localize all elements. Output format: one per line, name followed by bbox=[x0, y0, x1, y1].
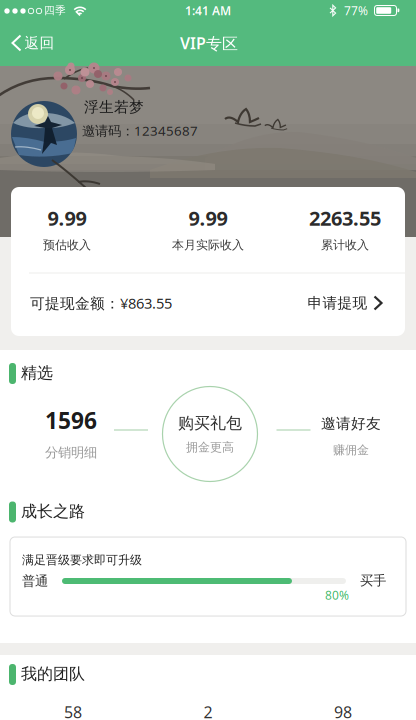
staticText: 拥金更高 bbox=[186, 440, 234, 455]
button[interactable]: 购买礼包 bbox=[160, 384, 260, 484]
staticText: 9.99 bbox=[188, 205, 227, 231]
staticText: 98 bbox=[334, 701, 352, 720]
staticText: 2263.55 bbox=[309, 205, 381, 231]
staticText: 1:41 AM bbox=[185, 2, 231, 18]
staticText: 9.99 bbox=[47, 205, 86, 231]
staticText: 买手 bbox=[360, 572, 386, 589]
staticText: 邀请码：12345687 bbox=[82, 122, 198, 139]
button[interactable]: 返回 bbox=[1, 27, 65, 59]
staticText: 分销明细 bbox=[45, 444, 97, 461]
staticText: 2 bbox=[203, 701, 212, 720]
staticText: 邀请好友 bbox=[321, 415, 381, 433]
staticText: 购买礼包 bbox=[178, 413, 242, 433]
staticText: 浮生若梦 bbox=[84, 98, 144, 116]
staticText: 赚佣金 bbox=[333, 443, 369, 457]
staticText: 成长之路 bbox=[21, 502, 85, 521]
staticText: 申请提现 bbox=[307, 294, 367, 312]
button[interactable]: 1596 bbox=[11, 398, 131, 468]
staticText: 本月实际收入 bbox=[172, 238, 244, 252]
staticText: 普通 bbox=[22, 573, 48, 589]
staticText: 1596 bbox=[45, 405, 97, 435]
staticText: 80% bbox=[325, 587, 349, 603]
button[interactable]: 申请提现 bbox=[307, 288, 382, 318]
staticText: 返回 bbox=[24, 34, 54, 52]
staticText: VIP专区 bbox=[180, 32, 238, 54]
staticText: 77% bbox=[344, 2, 368, 18]
staticText: 四季 bbox=[44, 4, 66, 17]
staticText: 累计收入 bbox=[321, 238, 369, 252]
button[interactable]: 邀请好友 bbox=[296, 406, 406, 466]
staticText: 我的团队 bbox=[21, 664, 85, 684]
staticText: 满足晋级要求即可升级 bbox=[22, 553, 142, 567]
staticText: 可提现金额：¥863.55 bbox=[30, 293, 172, 313]
staticText: 58 bbox=[64, 701, 82, 720]
staticText: 精选 bbox=[21, 363, 53, 383]
staticText: 预估收入 bbox=[43, 238, 91, 252]
